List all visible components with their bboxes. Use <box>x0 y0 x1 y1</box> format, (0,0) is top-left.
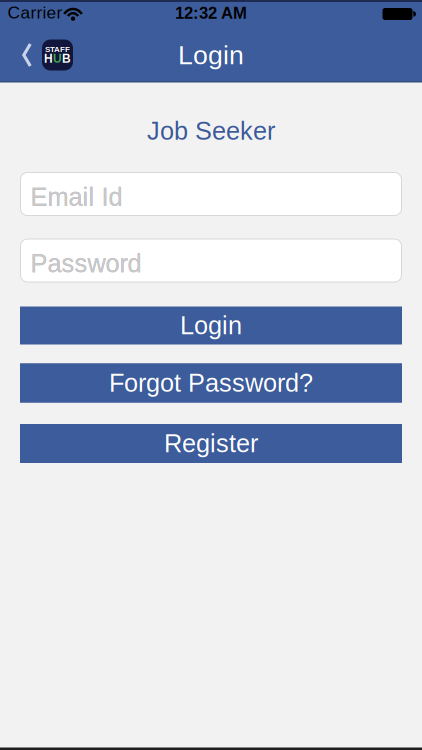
staticText: Carrier <box>7 3 62 22</box>
textField[interactable]: Password <box>30 249 401 278</box>
staticText: H <box>44 52 53 65</box>
staticText: Forgot Password? <box>109 369 313 397</box>
button[interactable]: Register <box>20 424 402 463</box>
button[interactable]: Login <box>20 306 402 344</box>
staticText: Register <box>164 429 258 458</box>
textField[interactable]: Email Id <box>30 183 401 211</box>
staticText: Job Seeker <box>147 117 275 145</box>
button[interactable]: Back <box>16 39 38 71</box>
staticText: B <box>62 52 71 65</box>
staticText: Login <box>178 40 244 70</box>
staticText: U <box>53 52 62 65</box>
staticText: 12:32 AM <box>175 4 247 22</box>
staticText: Email Id <box>30 183 122 211</box>
staticText: Login <box>180 311 242 340</box>
staticText: Password <box>30 249 141 278</box>
staticText: STAFF <box>45 45 70 54</box>
button[interactable]: Forgot Password? <box>20 363 402 403</box>
staticText: Password <box>30 249 141 278</box>
staticText: Email Id <box>30 183 122 211</box>
